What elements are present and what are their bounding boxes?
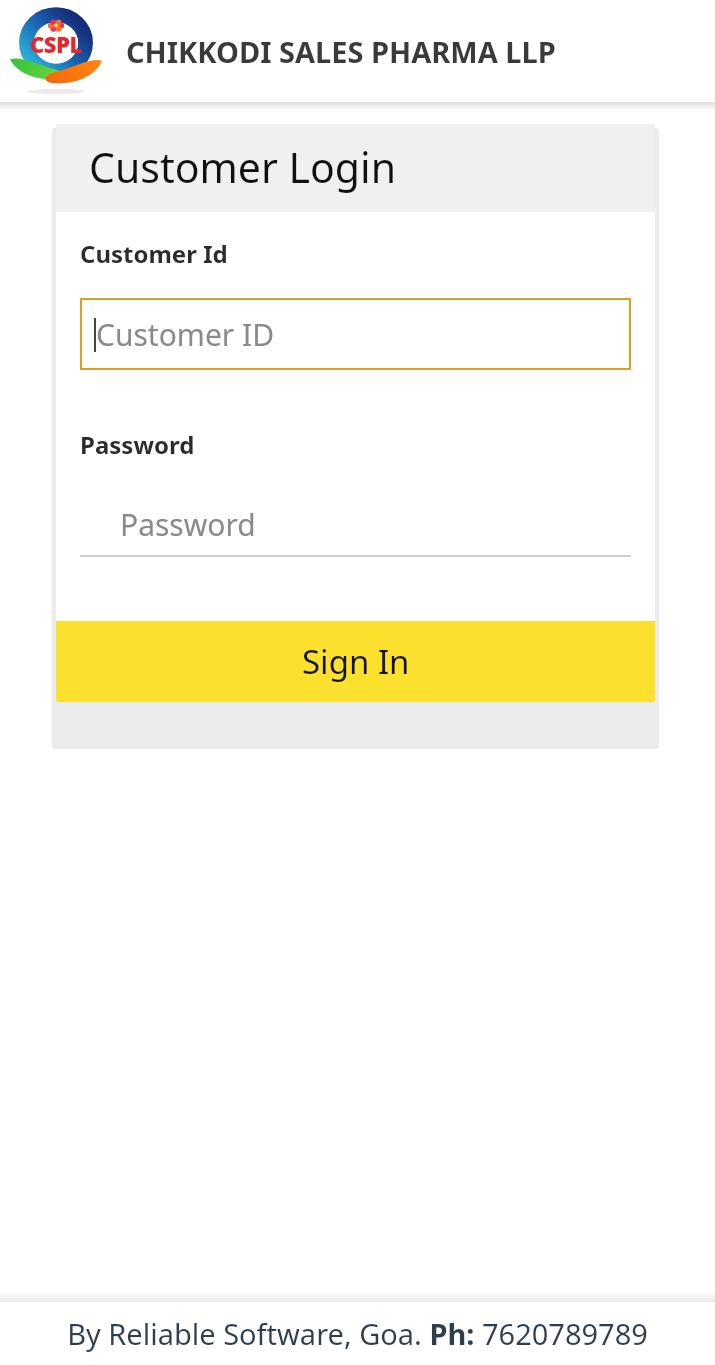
staticText: CSPL xyxy=(30,29,82,59)
button[interactable]: Sign In xyxy=(56,621,655,702)
staticText: Password xyxy=(120,504,256,545)
other: CSPL logo xyxy=(8,3,104,99)
staticText: Sign In xyxy=(302,639,410,684)
staticText: Customer Login xyxy=(89,139,396,195)
button[interactable]: Password xyxy=(80,493,631,557)
button[interactable]: Customer ID xyxy=(80,298,631,370)
staticText: By Reliable Software, Goa. Ph: 762078978… xyxy=(67,1314,648,1353)
staticText: Customer ID xyxy=(96,314,275,355)
staticText: Customer Id xyxy=(80,237,228,270)
staticText: Password xyxy=(80,428,195,461)
staticText: CHIKKODI SALES PHARMA LLP xyxy=(126,32,556,71)
